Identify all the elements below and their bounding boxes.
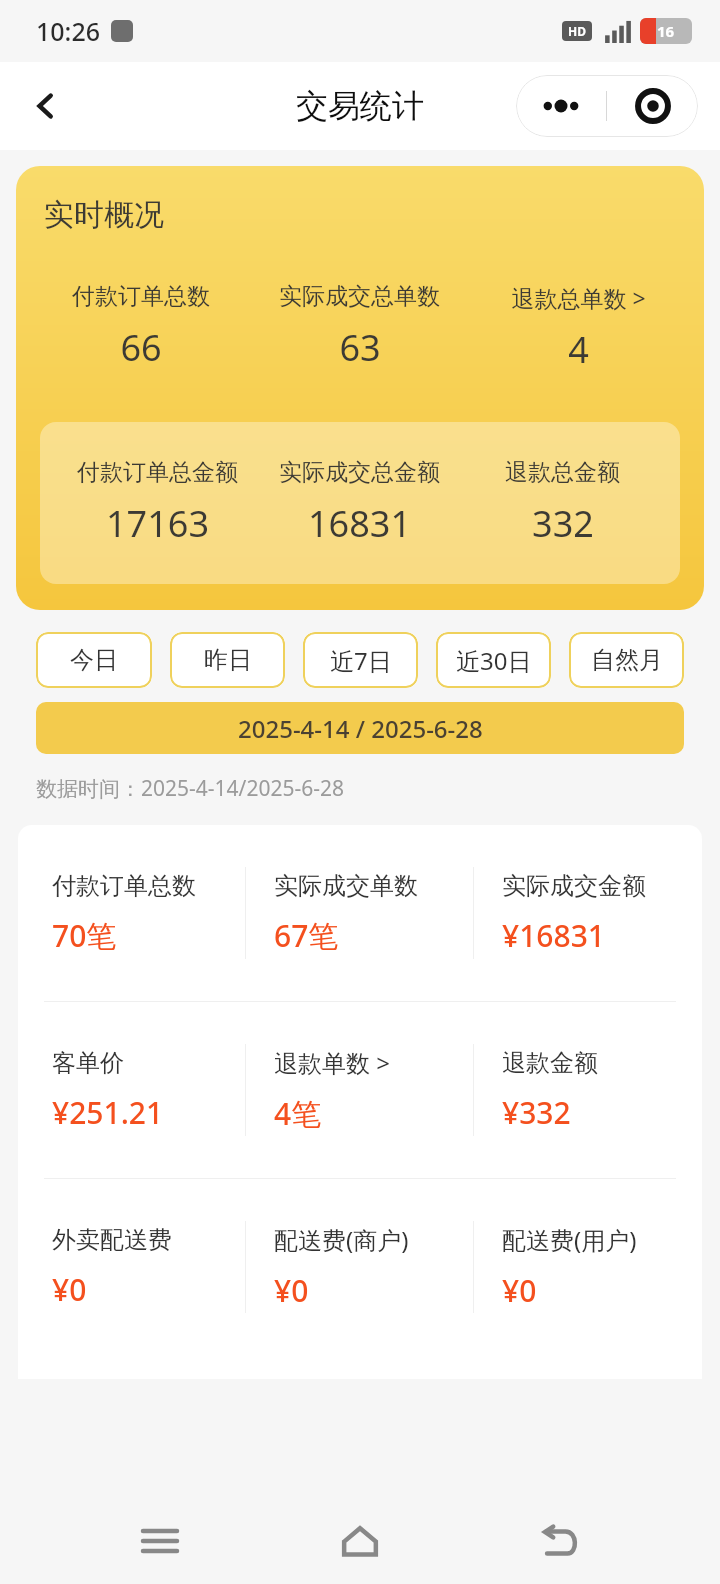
staticText: 今日 (70, 645, 118, 675)
staticText: 332 (532, 499, 594, 548)
staticText: 近7日 (330, 644, 392, 677)
staticText: 66 (120, 323, 162, 372)
button[interactable]: 实际成交单数 (246, 825, 474, 1001)
staticText: 昨日 (204, 645, 252, 675)
button[interactable]: Home (320, 1501, 400, 1581)
staticText: ¥16831 (502, 915, 605, 956)
staticText: 退款金额 (502, 1048, 598, 1078)
button[interactable]: 退款单数 > (246, 1002, 474, 1178)
staticText: 退款总金额 (505, 458, 620, 487)
staticText: ¥0 (274, 1270, 309, 1311)
staticText: 近30日 (456, 644, 532, 677)
staticText: ¥0 (52, 1269, 87, 1310)
button[interactable]: 昨日 (170, 632, 285, 688)
button[interactable]: 今日 (36, 632, 152, 688)
staticText: 实际成交总单数 (279, 282, 440, 311)
staticText: 4笔 (274, 1093, 322, 1134)
staticText: 实际成交金额 (502, 871, 646, 901)
staticText: 2025-4-14 / 2025-6-28 (238, 712, 483, 745)
staticText: 16 (657, 21, 675, 41)
button[interactable]: 2025-4-14 / 2025-6-28 (36, 702, 684, 754)
staticText: 付款订单总数 (52, 871, 196, 901)
button[interactable]: Back (20, 80, 72, 132)
staticText: 17163 (106, 499, 209, 548)
button[interactable]: More (516, 75, 606, 137)
staticText: ¥332 (502, 1092, 571, 1133)
staticText: 67笔 (274, 915, 339, 956)
staticText: ¥0 (502, 1270, 537, 1311)
button[interactable]: 实际成交金额 (474, 825, 702, 1001)
staticText: 数据时间：2025-4-14/2025-6-28 (36, 774, 345, 803)
staticText: 自然月 (591, 645, 663, 675)
button[interactable]: 配送费(用户) (474, 1179, 702, 1355)
button[interactable]: 客单价 (18, 1002, 246, 1178)
staticText: 实时概况 (44, 196, 164, 234)
staticText: 交易统计 (296, 86, 424, 126)
button[interactable]: 配送费(商户) (246, 1179, 474, 1355)
staticText: 63 (339, 323, 381, 372)
staticText: 16831 (308, 499, 411, 548)
staticText: 配送费(商户) (274, 1223, 409, 1256)
staticText: 实际成交单数 (274, 871, 418, 901)
staticText: 10:26 (36, 14, 101, 48)
button[interactable]: 付款订单总数 (18, 825, 246, 1001)
staticText: 外卖配送费 (52, 1225, 172, 1255)
staticText: 客单价 (52, 1048, 124, 1078)
staticText: 70笔 (52, 915, 117, 956)
button[interactable]: 自然月 (569, 632, 684, 688)
button[interactable]: 近30日 (436, 632, 551, 688)
button[interactable]: 外卖配送费 (18, 1179, 246, 1355)
button[interactable]: 近7日 (303, 632, 418, 688)
button[interactable]: Recent apps (120, 1501, 200, 1581)
button[interactable]: 退款金额 (474, 1002, 702, 1178)
button[interactable]: 实时概况 (16, 166, 704, 610)
button[interactable]: Back (520, 1501, 600, 1581)
staticText: 付款订单总金额 (77, 458, 238, 487)
button[interactable]: Close (607, 75, 698, 137)
staticText: ¥251.21 (52, 1092, 164, 1133)
staticText: 付款订单总数 (72, 282, 210, 311)
staticText: 配送费(用户) (502, 1223, 637, 1256)
staticText: HD (568, 23, 586, 39)
staticText: 4 (568, 325, 589, 374)
staticText: 实际成交总金额 (279, 458, 440, 487)
staticText: 退款总单数 > (511, 282, 646, 313)
staticText: 退款单数 > (274, 1046, 390, 1079)
